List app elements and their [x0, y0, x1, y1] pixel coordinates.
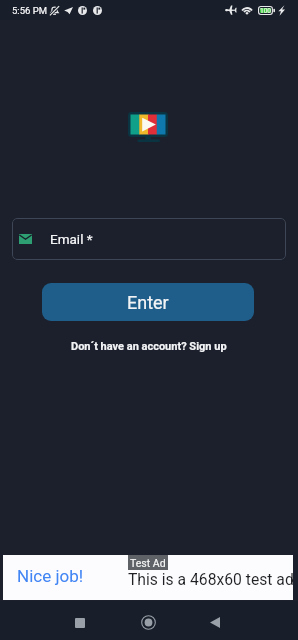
- staticText: Nice job!: [17, 566, 84, 586]
- staticText: This is a 468x60 test ad.: [128, 570, 293, 588]
- staticText: 5:56 PM: [12, 5, 47, 16]
- staticText: 100: [258, 7, 273, 15]
- other: Airplane mode: [225, 5, 237, 15]
- button[interactable]: Nice job!: [3, 555, 293, 600]
- button[interactable]: Home: [124, 601, 173, 640]
- button[interactable]: Email *: [12, 218, 286, 260]
- staticText: Email *: [50, 231, 93, 247]
- staticText: Test Ad: [130, 557, 166, 569]
- button[interactable]: Back: [190, 601, 239, 640]
- button[interactable]: Don´t have an account? Sign up: [71, 340, 227, 353]
- button[interactable]: Recent apps: [55, 601, 104, 640]
- button[interactable]: Enter: [42, 283, 254, 321]
- staticText: Enter: [127, 292, 169, 313]
